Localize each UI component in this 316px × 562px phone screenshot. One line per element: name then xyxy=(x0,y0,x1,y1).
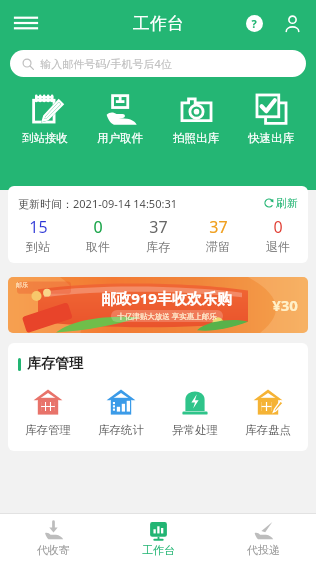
staticText: 0 xyxy=(93,216,103,238)
staticText: 拍照出库 xyxy=(173,131,219,145)
staticText: 邮乐 xyxy=(16,281,28,289)
staticText: 到站 xyxy=(26,239,50,254)
button[interactable]: 到站接收 xyxy=(10,91,80,147)
staticText: 代收寄 xyxy=(37,543,70,557)
staticText: 库存管理 xyxy=(27,355,83,373)
staticText: 37 xyxy=(209,216,228,238)
staticText: 库存盘点 xyxy=(245,423,291,437)
staticText: 代投递 xyxy=(247,543,280,557)
staticText: 工作台 xyxy=(133,13,184,34)
staticText: 37 xyxy=(149,216,168,238)
staticText: ¥30 xyxy=(272,295,298,315)
button[interactable]: 37 xyxy=(128,216,188,254)
button[interactable]: 代投递 xyxy=(211,514,316,562)
button[interactable]: 库存盘点 xyxy=(232,387,304,437)
staticText: 异常处理 xyxy=(172,423,218,437)
button[interactable]: 快速出库 xyxy=(236,91,306,147)
button[interactable]: 0 xyxy=(68,216,128,254)
button[interactable]: 异常处理 xyxy=(159,387,231,437)
button[interactable]: 输入邮件号码/手机号后4位 xyxy=(10,50,306,77)
button[interactable]: 15 xyxy=(8,216,68,254)
button[interactable]: Profile xyxy=(276,7,308,39)
button[interactable]: 邮政919丰收欢乐购 banner xyxy=(8,277,308,333)
staticText: 快速出库 xyxy=(248,131,294,145)
staticText: 0 xyxy=(273,216,283,238)
staticText: 邮政919丰收欢乐购 xyxy=(101,288,232,308)
button[interactable]: 工作台 xyxy=(106,514,211,562)
staticText: 工作台 xyxy=(142,543,175,557)
staticText: 滞留 xyxy=(206,239,230,254)
button[interactable]: 0 xyxy=(248,216,308,254)
button[interactable]: 代收寄 xyxy=(0,514,106,562)
staticText: 15 xyxy=(29,216,48,238)
staticText: 刷新 xyxy=(276,196,298,210)
staticText: 十亿津贴大放送 享实惠上邮乐 xyxy=(117,311,217,321)
staticText: 取件 xyxy=(86,239,110,254)
button[interactable]: Help xyxy=(238,7,270,39)
button[interactable]: Menu xyxy=(6,3,46,43)
button[interactable]: 库存统计 xyxy=(85,387,157,437)
staticText: 库存管理 xyxy=(25,423,71,437)
button[interactable]: 刷新 xyxy=(262,194,300,212)
staticText: 库存 xyxy=(146,239,170,254)
staticText: 更新时间：2021-09-14 14:50:31 xyxy=(18,196,177,211)
staticText: ? xyxy=(251,16,257,31)
button[interactable]: 用户取件 xyxy=(85,91,155,147)
button[interactable]: 拍照出库 xyxy=(161,91,231,147)
staticText: 输入邮件号码/手机号后4位 xyxy=(40,56,172,71)
button[interactable]: 库存管理 xyxy=(12,387,84,437)
staticText: 用户取件 xyxy=(97,131,143,145)
staticText: 到站接收 xyxy=(22,131,68,145)
staticText: 库存统计 xyxy=(98,423,144,437)
button[interactable]: 37 xyxy=(188,216,248,254)
staticText: 退件 xyxy=(266,239,290,254)
